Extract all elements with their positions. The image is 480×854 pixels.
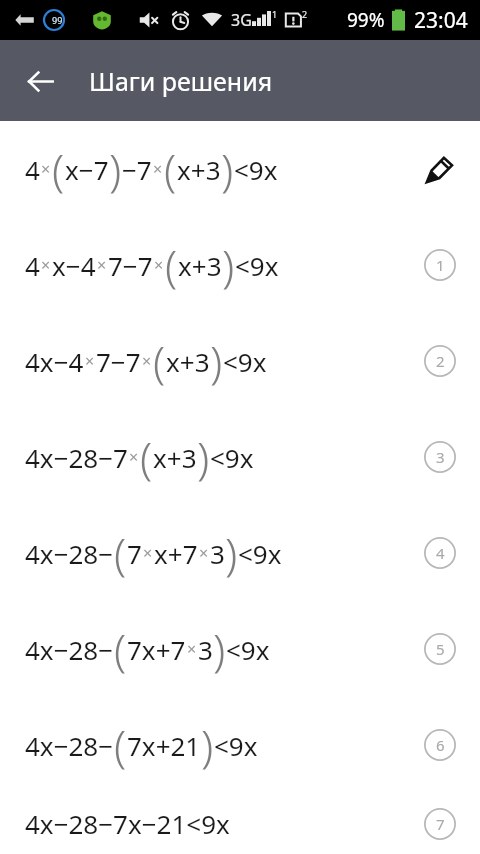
staticText: )	[197, 428, 210, 488]
staticText: <9x	[226, 632, 270, 667]
button[interactable]: Step 5	[416, 625, 464, 673]
staticText: −7	[122, 152, 152, 187]
staticText: 4	[25, 248, 40, 283]
staticText: 4x−4	[25, 344, 84, 379]
staticText: )	[201, 716, 214, 776]
staticText: ×	[153, 158, 163, 180]
staticText: 7x+21	[127, 728, 201, 763]
staticText: ×	[199, 542, 209, 564]
staticText: x+3	[178, 248, 222, 283]
staticText: 4x−28−7x−21<9x	[25, 806, 230, 841]
staticText: 3	[210, 536, 225, 571]
staticText: (	[140, 428, 153, 488]
button[interactable]: Step 7	[416, 800, 464, 848]
staticText: x−7	[65, 152, 109, 187]
staticText: 1	[436, 255, 445, 275]
staticText: 4x−28−	[25, 536, 114, 571]
staticText: 6	[436, 735, 445, 755]
button[interactable]: Step 1	[416, 241, 464, 289]
staticText: ×	[142, 350, 152, 372]
staticText: x+3	[153, 440, 197, 475]
staticText: )	[222, 236, 235, 296]
staticText: )	[225, 524, 238, 584]
staticText: (	[165, 236, 178, 296]
staticText: 99%	[347, 7, 385, 33]
staticText: ×	[85, 350, 95, 372]
staticText: Шаги решения	[89, 64, 273, 98]
staticText: ×	[187, 638, 197, 660]
staticText: 2	[436, 351, 445, 371]
button[interactable]: 4x−4	[0, 313, 480, 409]
staticText: 3	[198, 632, 213, 667]
staticText: ×	[143, 542, 153, 564]
staticText: )	[109, 140, 122, 200]
staticText: (	[52, 140, 65, 200]
staticText: x−4	[52, 248, 96, 283]
button[interactable]: Step 4	[416, 529, 464, 577]
staticText: 1	[272, 8, 278, 20]
button[interactable]: 4x−28−7x−21<9x	[0, 793, 480, 854]
button[interactable]: 4	[0, 217, 480, 313]
staticText: ×	[41, 254, 51, 276]
staticText: 99	[52, 14, 63, 26]
button[interactable]: Back	[12, 53, 68, 109]
staticText: 7x+7	[127, 632, 186, 667]
staticText: )	[210, 332, 223, 392]
button[interactable]: Step 3	[416, 433, 464, 481]
staticText: <9x	[235, 248, 279, 283]
staticText: ×	[129, 446, 139, 468]
staticText: 4x−28−7	[25, 440, 128, 475]
staticText: <9x	[214, 728, 258, 763]
staticText: 4x−28−	[25, 728, 114, 763]
button[interactable]: 4x−28−	[0, 697, 480, 793]
button[interactable]: Step 2	[416, 337, 464, 385]
staticText: )	[221, 140, 234, 200]
button[interactable]: 4x−28−	[0, 505, 480, 601]
staticText: <9x	[234, 152, 278, 187]
staticText: ×	[97, 254, 107, 276]
staticText: )	[213, 620, 226, 680]
button[interactable]: 4	[0, 121, 480, 217]
staticText: 7−7	[108, 248, 153, 283]
staticText: <9x	[238, 536, 282, 571]
staticText: 3	[436, 447, 445, 467]
staticText: (	[114, 524, 127, 584]
staticText: x+3	[177, 152, 221, 187]
staticText: (	[114, 716, 127, 776]
staticText: <9x	[223, 344, 267, 379]
staticText: 7−7	[96, 344, 141, 379]
staticText: ×	[154, 254, 164, 276]
staticText: (	[153, 332, 166, 392]
staticText: 2	[302, 8, 308, 20]
staticText: (	[164, 140, 177, 200]
button[interactable]: 4x−28−7	[0, 409, 480, 505]
staticText: 4	[25, 152, 40, 187]
staticText: x+3	[166, 344, 210, 379]
staticText: 7	[436, 814, 445, 834]
staticText: 3G	[231, 9, 252, 31]
staticText: 5	[436, 639, 445, 659]
button[interactable]: Edit	[416, 145, 464, 193]
button[interactable]: 4x−28−	[0, 601, 480, 697]
staticText: ×	[41, 158, 51, 180]
staticText: 4x−28−	[25, 632, 114, 667]
staticText: 7	[127, 536, 142, 571]
staticText: <9x	[210, 440, 254, 475]
staticText: (	[114, 620, 127, 680]
staticText: 4	[436, 543, 445, 563]
staticText: x+7	[154, 536, 198, 571]
staticText: 23:04	[414, 6, 468, 35]
button[interactable]: Step 6	[416, 721, 464, 769]
